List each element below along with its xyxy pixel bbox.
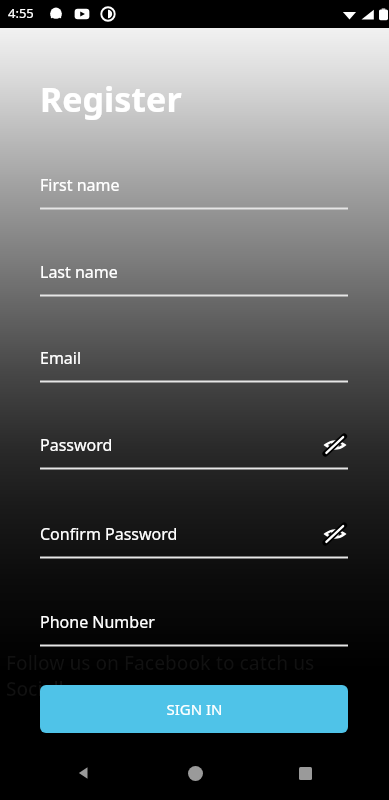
staticText: Confirm Password [40,523,178,545]
staticText: Follow us on Facebook to catch us Social… [6,650,386,702]
button[interactable]: Confirm Password [40,521,348,559]
staticText: Last name [40,261,118,283]
button[interactable]: Toggle password visibility [320,519,350,549]
button[interactable]: Password [40,432,348,470]
button[interactable]: Home [173,751,217,795]
button[interactable]: Email [40,345,348,383]
staticText: Password [40,434,113,456]
staticText: Register [40,76,182,122]
button[interactable]: Back [62,751,106,795]
staticText: Phone Number [40,611,155,633]
staticText: Email [40,347,82,369]
button[interactable]: Recent apps [283,751,327,795]
button[interactable]: Phone Number [40,609,348,647]
staticText: SIGN IN [166,699,223,719]
button[interactable]: First name [40,172,348,210]
staticText: 4:55 [8,4,34,22]
staticText: First name [40,174,120,196]
button[interactable]: SIGN IN [40,685,348,733]
button[interactable]: Toggle password visibility [320,430,350,460]
button[interactable]: Last name [40,259,348,297]
